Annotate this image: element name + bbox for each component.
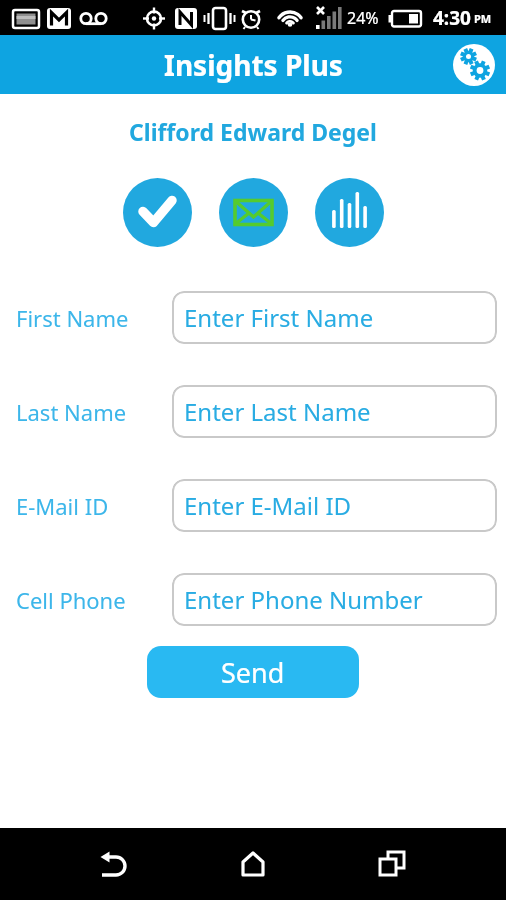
button[interactable] <box>123 178 192 247</box>
staticText: Last Name <box>16 397 127 427</box>
staticText: Enter First Name <box>184 301 374 334</box>
staticText: Enter E-Mail ID <box>184 489 352 522</box>
button[interactable]: Enter First Name <box>172 291 497 344</box>
button[interactable]: Enter Phone Number <box>172 573 497 626</box>
staticText: First Name <box>16 303 129 333</box>
button[interactable] <box>315 178 384 247</box>
button[interactable] <box>78 828 150 900</box>
staticText: Cell Phone <box>16 585 126 615</box>
staticText: Enter Phone Number <box>184 583 423 616</box>
staticText: Clifford Edward Degel <box>0 116 506 147</box>
staticText: PM <box>474 11 492 26</box>
button[interactable] <box>217 828 289 900</box>
button[interactable] <box>219 178 288 247</box>
button[interactable]: Enter Last Name <box>172 385 497 438</box>
staticText: Insights Plus <box>164 46 343 84</box>
staticText: Send <box>221 654 285 691</box>
button[interactable]: Send <box>147 646 359 698</box>
button[interactable] <box>453 44 495 86</box>
button[interactable] <box>356 828 428 900</box>
staticText: E-Mail ID <box>16 491 109 521</box>
button[interactable]: Enter E-Mail ID <box>172 479 497 532</box>
staticText: 4:30 <box>433 5 471 31</box>
staticText: Enter Last Name <box>184 395 371 428</box>
staticText: 24% <box>347 7 379 29</box>
